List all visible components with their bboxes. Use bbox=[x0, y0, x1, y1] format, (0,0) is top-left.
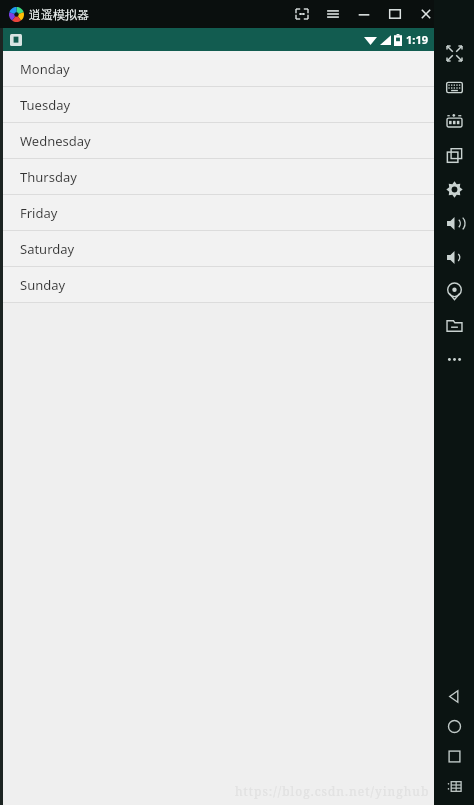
button[interactable]: Shared folder bbox=[434, 308, 474, 342]
staticText: Thursday bbox=[20, 168, 77, 186]
button[interactable]: App list bbox=[434, 771, 474, 801]
button[interactable]: Saturday bbox=[3, 231, 434, 267]
staticText: Monday bbox=[20, 60, 70, 78]
button[interactable]: Volume up bbox=[434, 206, 474, 240]
button[interactable]: Minimize bbox=[348, 0, 379, 28]
button[interactable]: Keyboard bbox=[434, 70, 474, 104]
button[interactable]: Screenshot bbox=[286, 0, 317, 28]
staticText: 1:19 bbox=[406, 32, 428, 47]
button[interactable]: Volume down bbox=[434, 240, 474, 274]
button[interactable]: Install APK bbox=[434, 104, 474, 138]
button[interactable]: Wednesday bbox=[3, 123, 434, 159]
button[interactable]: More bbox=[434, 342, 474, 376]
button[interactable]: Maximize bbox=[379, 0, 410, 28]
button[interactable]: Recents bbox=[434, 741, 474, 771]
button[interactable]: Thursday bbox=[3, 159, 434, 195]
button[interactable]: Location bbox=[434, 274, 474, 308]
button[interactable]: Back bbox=[434, 681, 474, 711]
staticText: 逍遥模拟器 bbox=[29, 7, 89, 22]
button[interactable]: Tuesday bbox=[3, 87, 434, 123]
button[interactable]: Multi window bbox=[434, 138, 474, 172]
staticText: Tuesday bbox=[20, 96, 71, 114]
staticText: Saturday bbox=[20, 240, 75, 258]
button[interactable]: Menu bbox=[317, 0, 348, 28]
button[interactable]: Sunday bbox=[3, 267, 434, 303]
staticText: Wednesday bbox=[20, 132, 91, 150]
staticText: Sunday bbox=[20, 276, 66, 294]
button[interactable]: Monday bbox=[3, 51, 434, 87]
staticText: Friday bbox=[20, 204, 58, 222]
button[interactable]: Close bbox=[410, 0, 441, 28]
button[interactable]: Settings bbox=[434, 172, 474, 206]
staticText: https://blog.csdn.net/yinghub bbox=[235, 783, 430, 799]
button[interactable]: Friday bbox=[3, 195, 434, 231]
button[interactable]: Fullscreen bbox=[434, 36, 474, 70]
button[interactable]: Home bbox=[434, 711, 474, 741]
